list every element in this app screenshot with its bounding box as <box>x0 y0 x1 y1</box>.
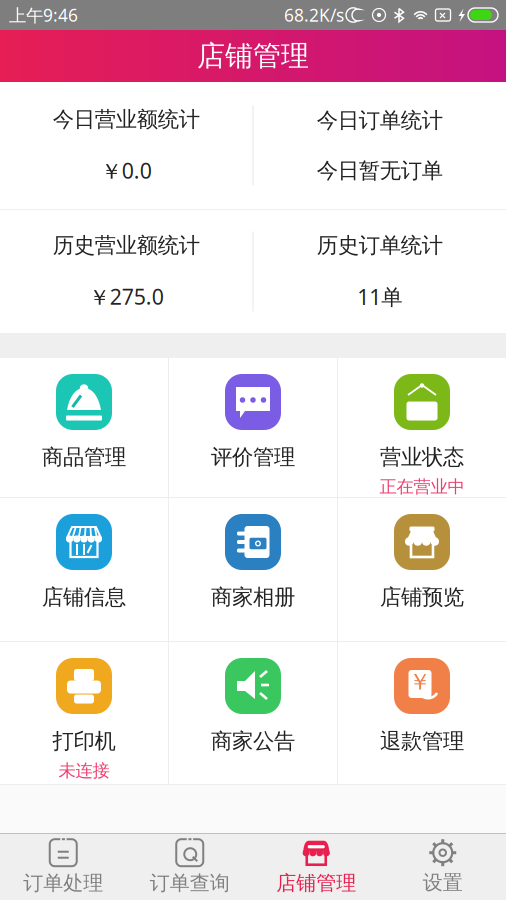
button[interactable]: 商家公告 <box>169 642 337 784</box>
staticText: ￥0.0 <box>101 156 152 185</box>
button[interactable]: ￥ <box>338 642 506 784</box>
staticText: ￥ <box>408 668 431 696</box>
button[interactable]: 店铺信息 <box>0 498 168 641</box>
staticText: 店铺信息 <box>42 584 126 610</box>
staticText: 商家相册 <box>211 584 295 610</box>
staticText: 今日订单统计 <box>317 107 443 133</box>
staticText: ￥275.0 <box>89 282 164 311</box>
staticText: 上午9:46 <box>9 3 78 26</box>
staticText: 68.2K/s <box>284 3 344 26</box>
button[interactable]: 打印机 <box>0 642 168 784</box>
button[interactable]: 历史营业额统计 <box>0 212 252 331</box>
button[interactable]: 商品管理 <box>0 358 168 497</box>
button[interactable]: 设置 <box>379 834 506 900</box>
staticText: 设置 <box>423 870 463 895</box>
staticText: 店铺管理 <box>197 39 309 73</box>
staticText: 历史订单统计 <box>317 232 443 258</box>
staticText: 评价管理 <box>211 444 295 470</box>
staticText: 今日营业额统计 <box>53 106 200 132</box>
staticText: 订单查询 <box>150 871 230 895</box>
button[interactable]: 今日营业额统计 <box>0 86 252 205</box>
staticText: 今日暂无订单 <box>317 157 443 184</box>
staticText: 退款管理 <box>380 728 464 754</box>
button[interactable]: 历史订单统计 <box>253 212 506 331</box>
staticText: 正在营业中 <box>379 476 464 497</box>
button[interactable]: 营业状态 <box>338 358 506 497</box>
staticText: 11单 <box>357 282 402 311</box>
staticText: 订单处理 <box>23 871 103 895</box>
button[interactable]: 店铺管理 <box>253 834 379 900</box>
button[interactable]: 今日订单统计 <box>253 87 506 204</box>
staticText: 营业状态 <box>380 444 464 470</box>
staticText: 商品管理 <box>42 444 126 470</box>
staticText: 商家公告 <box>211 728 295 754</box>
staticText: 店铺管理 <box>276 871 356 895</box>
button[interactable]: 订单处理 <box>0 834 126 900</box>
button[interactable]: 评价管理 <box>169 358 337 497</box>
staticText: 历史营业额统计 <box>53 232 200 258</box>
staticText: 打印机 <box>52 728 115 754</box>
button[interactable]: 订单查询 <box>126 834 253 900</box>
button[interactable]: 商家相册 <box>169 498 337 641</box>
staticText: 店铺预览 <box>380 584 464 610</box>
staticText: 未连接 <box>58 760 109 781</box>
button[interactable]: 店铺预览 <box>338 498 506 641</box>
